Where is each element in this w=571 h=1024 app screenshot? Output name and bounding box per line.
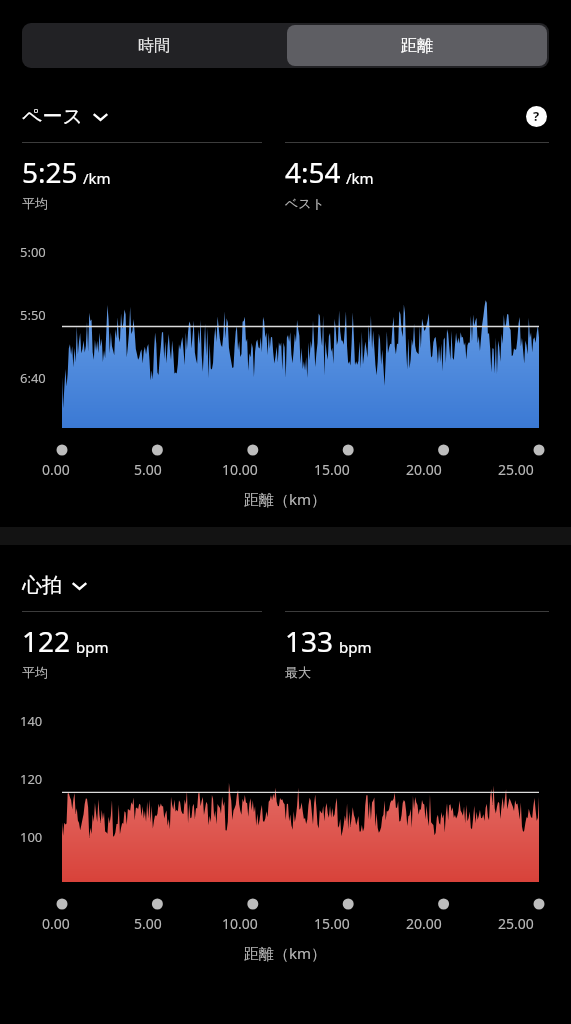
staticText: ペース xyxy=(22,104,83,129)
staticText: 133 xyxy=(285,622,334,660)
staticText: 心拍 xyxy=(22,573,62,598)
staticText: 0.00 xyxy=(42,460,70,479)
staticText: 15.00 xyxy=(314,914,350,933)
button[interactable]: Help xyxy=(521,101,551,131)
staticText: 25.00 xyxy=(498,460,534,479)
button[interactable]: 時間 xyxy=(22,23,285,68)
staticText: 5:00 xyxy=(20,243,46,261)
staticText: 122 xyxy=(22,622,71,660)
staticText: 5.00 xyxy=(134,460,162,479)
staticText: bpm xyxy=(76,637,109,657)
staticText: 140 xyxy=(20,712,43,730)
staticText: 距離 xyxy=(401,36,433,56)
staticText: 100 xyxy=(20,828,43,846)
staticText: 平均 xyxy=(22,195,48,211)
staticText: 5.00 xyxy=(134,914,162,933)
staticText: 最大 xyxy=(285,664,311,680)
staticText: ベスト xyxy=(285,195,325,211)
staticText: 0.00 xyxy=(42,914,70,933)
staticText: 時間 xyxy=(138,36,170,56)
button[interactable]: ペース xyxy=(22,104,109,129)
staticText: 5:50 xyxy=(20,306,46,324)
staticText: /km xyxy=(83,168,111,188)
staticText: /km xyxy=(346,168,374,188)
staticText: 15.00 xyxy=(314,460,350,479)
staticText: 25.00 xyxy=(498,914,534,933)
staticText: 10.00 xyxy=(222,914,258,933)
staticText: bpm xyxy=(339,637,372,657)
staticText: 5:25 xyxy=(22,153,78,191)
staticText: 6:40 xyxy=(20,369,46,387)
staticText: 120 xyxy=(20,770,43,788)
staticText: 距離（km） xyxy=(244,943,327,963)
button[interactable]: 心拍 xyxy=(22,573,88,598)
button[interactable]: 距離 xyxy=(287,25,547,66)
staticText: 4:54 xyxy=(285,153,341,191)
staticText: ? xyxy=(533,107,540,125)
staticText: 20.00 xyxy=(406,460,442,479)
staticText: 20.00 xyxy=(406,914,442,933)
staticText: 平均 xyxy=(22,664,48,680)
staticText: 10.00 xyxy=(222,460,258,479)
staticText: 距離（km） xyxy=(244,489,327,509)
